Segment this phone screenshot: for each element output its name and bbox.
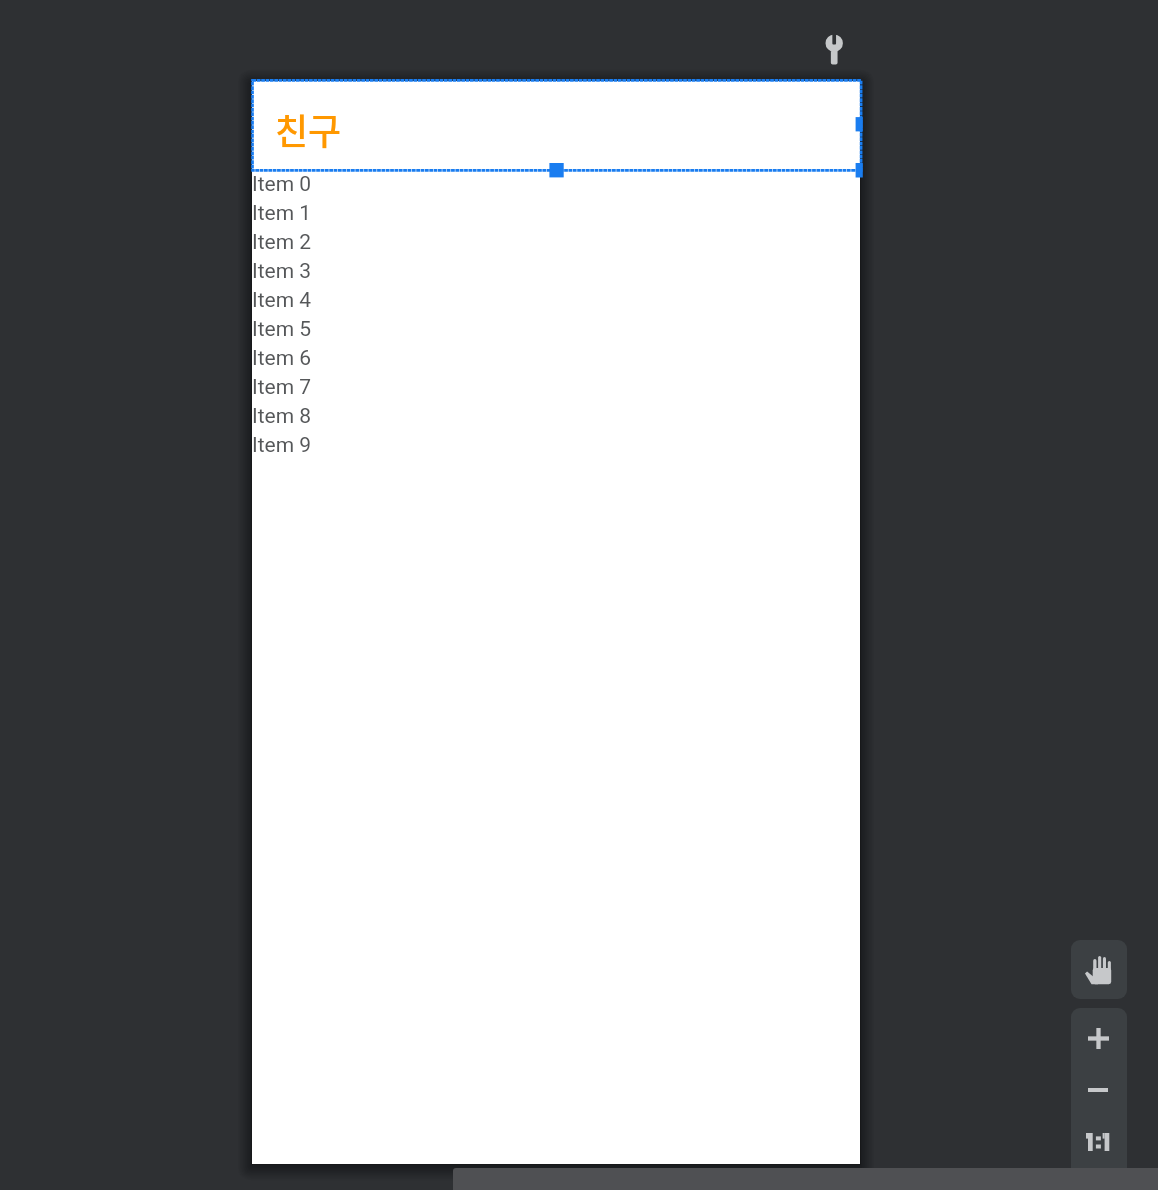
staticText: Item 0 (252, 172, 312, 197)
button[interactable]: Design tools (807, 22, 843, 58)
staticText: Item 7 (252, 375, 312, 400)
button[interactable]: Item 2 (252, 228, 860, 257)
staticText: Item 4 (252, 288, 312, 313)
button[interactable]: Item 8 (252, 402, 860, 431)
button[interactable]: Item 7 (252, 373, 860, 402)
staticText: Item 8 (252, 404, 312, 429)
button[interactable]: Item 5 (252, 315, 860, 344)
button[interactable]: Pan (1071, 940, 1127, 999)
button[interactable]: Zoom in (1071, 1008, 1127, 1068)
staticText: Item 5 (252, 317, 312, 342)
button[interactable]: Item 0 (252, 170, 860, 199)
button[interactable]: Item 6 (252, 344, 860, 373)
staticText: Item 1 (252, 201, 312, 226)
staticText: Item 2 (252, 230, 312, 255)
staticText: 친구 (275, 103, 342, 155)
button[interactable]: Zoom out (1071, 1064, 1127, 1116)
button[interactable]: Zoom to actual size (1071, 1116, 1127, 1168)
button[interactable]: Item 3 (252, 257, 860, 286)
staticText: Item 3 (252, 259, 312, 284)
staticText: Item 9 (252, 433, 312, 458)
button[interactable]: Item 1 (252, 199, 860, 228)
button[interactable]: Item 9 (252, 431, 860, 460)
button[interactable]: Item 4 (252, 286, 860, 315)
staticText: Item 6 (252, 346, 312, 371)
